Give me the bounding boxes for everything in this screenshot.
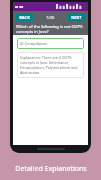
- button[interactable]: BACK: [16, 13, 33, 21]
- staticText: BACK: [19, 15, 30, 20]
- staticText: 4) Compilation: [20, 41, 48, 46]
- button[interactable]: 1/20: [44, 14, 57, 21]
- staticText: Which of the following is not OOPS conce…: [16, 24, 85, 34]
- staticText: Explanation: There are 4 OOPS concepts i…: [20, 55, 81, 75]
- staticText: 1/20: [46, 15, 55, 20]
- staticText: NEXT: [71, 15, 82, 20]
- button[interactable]: 4) Compilation: [17, 38, 84, 49]
- staticText: Detailed Explanations: [15, 164, 87, 174]
- button[interactable]: NEXT: [68, 13, 85, 21]
